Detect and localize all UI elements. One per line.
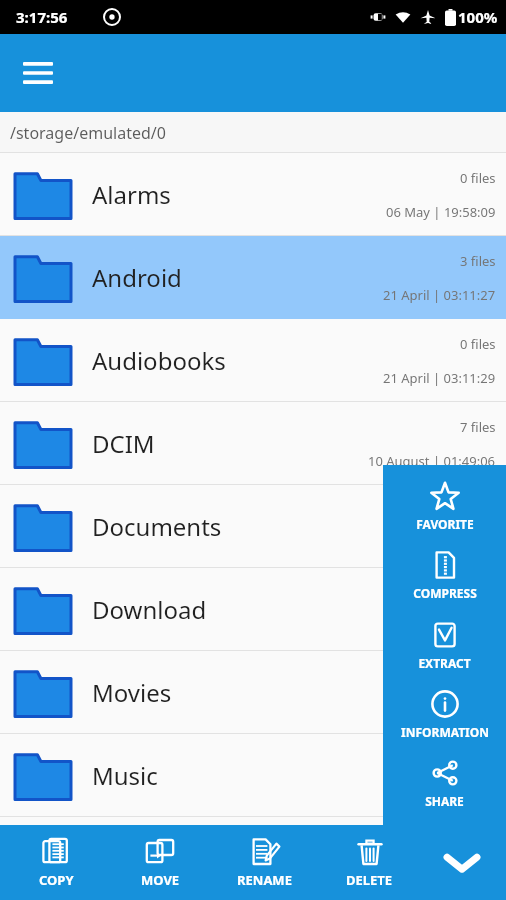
staticText: 0 files [460, 335, 496, 353]
button[interactable]: COMPRESS [383, 548, 506, 603]
staticText: 5 files [460, 584, 496, 602]
staticText: FAVORITE [416, 516, 474, 532]
staticText: 21 April | 03:11:29 [383, 369, 496, 387]
staticText: Audiobooks [92, 344, 226, 377]
button[interactable]: COPY [4, 825, 108, 900]
staticText: SHARE [425, 793, 464, 809]
staticText: 21 April | 03:11:37 [383, 784, 496, 802]
staticText: RENAME [237, 871, 292, 889]
button[interactable]: FAVORITE [383, 479, 506, 534]
staticText: 21 April | 03:11:35 [383, 701, 496, 719]
button[interactable]: Movies [0, 651, 506, 734]
staticText: 21 April | 03:11:31 [383, 535, 496, 553]
staticText: EXTRACT [418, 655, 471, 671]
button[interactable]: EXTRACT [383, 618, 506, 673]
staticText: DCIM [92, 427, 155, 460]
staticText: 3 files [460, 252, 496, 270]
staticText: Download [92, 593, 207, 626]
staticText: 3:17:56 [16, 7, 68, 27]
staticText: 100% [458, 7, 498, 27]
button[interactable]: RENAME [212, 825, 317, 900]
button[interactable]: Open navigation menu [14, 49, 62, 97]
button[interactable]: DELETE [317, 825, 422, 900]
button[interactable]: MOVE [108, 825, 212, 900]
staticText: 7 files [460, 418, 496, 436]
staticText: Music [92, 759, 158, 792]
staticText: Movies [92, 676, 172, 709]
button[interactable]: SHARE [383, 756, 506, 811]
staticText: 06 May | 19:58:09 [386, 203, 496, 221]
staticText: 0 files [460, 667, 496, 685]
staticText: 21 April | 03:11:33 [383, 618, 496, 636]
button[interactable]: Documents [0, 485, 506, 568]
staticText: COMPRESS [413, 585, 477, 601]
staticText: COPY [39, 871, 74, 889]
staticText: INFORMATION [401, 724, 489, 740]
staticText: Alarms [92, 178, 171, 211]
button[interactable]: INFORMATION [383, 687, 506, 742]
staticText: Android [92, 261, 182, 294]
button[interactable]: Collapse action panel [422, 825, 502, 900]
button[interactable]: Alarms [0, 153, 506, 236]
staticText: 10 August | 01:49:06 [368, 452, 496, 470]
staticText: /storage/emulated/0 [10, 122, 166, 144]
staticText: DELETE [346, 871, 393, 889]
button[interactable]: Audiobooks [0, 319, 506, 402]
button[interactable]: DCIM [0, 402, 506, 485]
staticText: Documents [92, 510, 222, 543]
staticText: MOVE [141, 871, 180, 889]
button[interactable]: Android [0, 236, 506, 319]
button[interactable]: Download [0, 568, 506, 651]
button[interactable]: Music [0, 734, 506, 817]
staticText: 21 April | 03:11:27 [383, 286, 496, 304]
staticText: 0 files [460, 169, 496, 187]
